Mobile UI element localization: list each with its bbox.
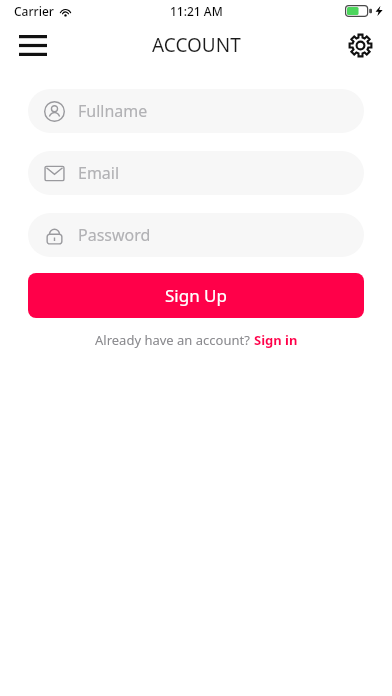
staticText: Email [78,162,120,184]
staticText: Carrier [14,3,54,19]
button[interactable]: Email [28,151,364,195]
button[interactable]: Sign in [254,331,298,349]
staticText: Sign Up [165,284,227,307]
staticText: Already have an account? [95,331,254,349]
staticText: 11:21 AM [170,3,223,19]
staticText: ACCOUNT [152,32,241,58]
button[interactable]: Settings [339,24,381,66]
staticText: Fullname [78,100,148,122]
button[interactable]: Menu [12,24,54,66]
button[interactable]: Sign Up [28,273,364,318]
staticText: Sign in [254,331,298,349]
button[interactable]: Password [28,213,364,257]
button[interactable]: Fullname [28,89,364,133]
staticText: Password [78,224,151,246]
